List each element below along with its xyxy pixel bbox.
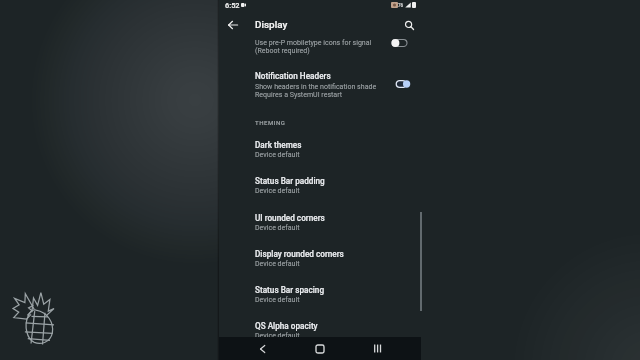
staticText: 6:52 [225, 1, 240, 10]
button[interactable]: Status Bar spacing [219, 280, 421, 304]
staticText: Display rounded corners [255, 249, 344, 259]
button[interactable]: UI rounded corners [219, 208, 421, 232]
staticText: Device default [255, 259, 300, 267]
staticText: Status Bar spacing [255, 285, 325, 295]
button[interactable]: Notification Headers [219, 70, 421, 100]
button[interactable]: Display rounded corners [219, 244, 421, 268]
staticText: Device default [255, 186, 300, 194]
staticText: Notification Headers [255, 71, 331, 81]
staticText: Dark themes [255, 140, 302, 150]
staticText: Requires a SystemUI restart [255, 90, 343, 98]
button[interactable]: QS Alpha opacity [219, 316, 421, 340]
staticText: QS Alpha opacity [255, 321, 318, 331]
button[interactable]: Status Bar padding [219, 171, 421, 195]
staticText: 76 [398, 3, 404, 8]
staticText: Status Bar padding [255, 176, 325, 186]
staticText: UI rounded corners [255, 213, 325, 223]
staticText: Use pre-P mobiletype icons for signal [255, 38, 372, 46]
button[interactable]: Recent apps [349, 337, 405, 360]
staticText: THEMING [255, 119, 286, 126]
staticText: Device default [255, 223, 300, 231]
button[interactable]: Use pre-P mobiletype icons for signal [219, 37, 421, 59]
staticText: Device default [255, 331, 300, 339]
button[interactable]: Dark themes [219, 135, 421, 159]
button[interactable]: Notification Headers, on [387, 78, 411, 90]
button[interactable]: Home [292, 337, 348, 360]
staticText: Device default [255, 295, 300, 303]
staticText: (Reboot required) [255, 46, 310, 54]
staticText: Show headers in the notification shade [255, 82, 377, 90]
button[interactable]: Back [234, 337, 290, 360]
button[interactable]: Navigate up [224, 16, 242, 34]
button[interactable]: Search [400, 16, 418, 34]
button[interactable]: Use pre-P mobiletype icons for signal, o… [387, 37, 411, 49]
staticText: Display [255, 19, 288, 31]
staticText: Device default [255, 150, 300, 158]
